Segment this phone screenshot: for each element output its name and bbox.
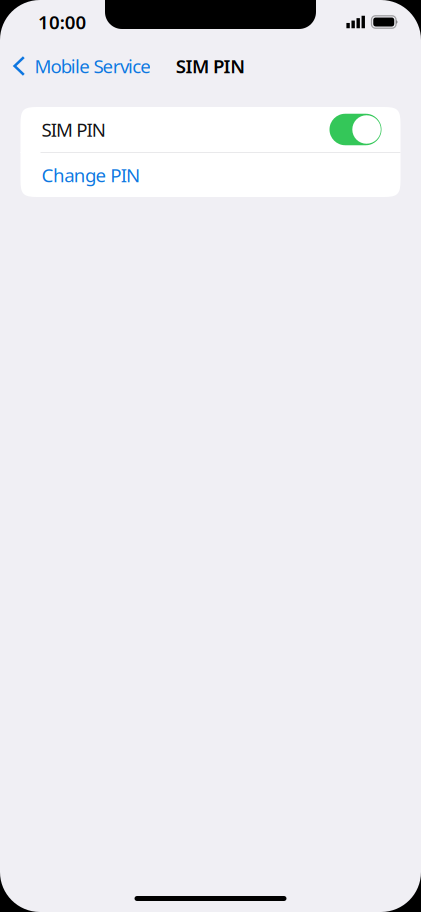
button[interactable]: Change PIN xyxy=(20,153,400,197)
staticText: SIM PIN xyxy=(41,117,106,142)
staticText: SIM PIN xyxy=(176,54,245,78)
staticText: Change PIN xyxy=(41,163,140,187)
staticText: Mobile Service xyxy=(34,54,151,78)
button[interactable]: Mobile Service xyxy=(0,47,151,85)
button[interactable]: SIM PIN xyxy=(20,107,400,152)
staticText: 10:00 xyxy=(38,10,87,34)
